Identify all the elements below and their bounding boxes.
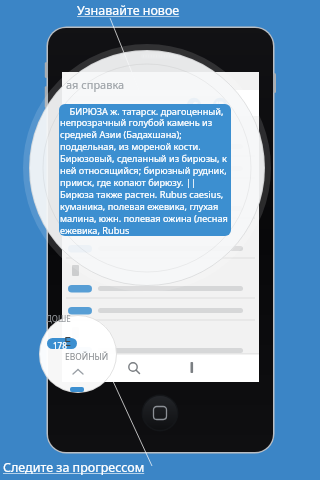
button[interactable]: ЕВОЙНЫЙ [65,351,109,363]
staticText: БИРЮЗА ж. татарск. драгоценный, непрозра… [60,105,231,236]
button[interactable]: БИРЮЗА ж. татарск. драгоценный, непрозра… [59,104,231,236]
button[interactable]: ая справка [66,77,125,92]
staticText: E [64,332,72,350]
button[interactable]: E [64,332,72,350]
button[interactable]: Следите за прогрессом [3,459,145,476]
button[interactable]: Bookmarks [180,358,204,382]
button[interactable]: 178 [53,340,67,351]
button[interactable]: Узнавайте новое [0,0,320,480]
staticText: 178 [53,340,67,351]
staticText: ДОШЕ [46,313,71,324]
staticText: ЕВОЙНЫЙ [65,351,109,363]
button[interactable]: ДОШЕ [46,313,71,324]
button[interactable]: Search [122,358,146,382]
button[interactable]: Home [142,395,178,431]
button[interactable]: Twitter [186,97,202,113]
button[interactable]: Узнавайте новое [77,2,180,19]
staticText: Узнавайте новое [77,2,180,19]
staticText: ая справка [66,77,125,92]
button[interactable]: VKontakte [212,97,228,113]
staticText: Следите за прогрессом [3,459,145,476]
